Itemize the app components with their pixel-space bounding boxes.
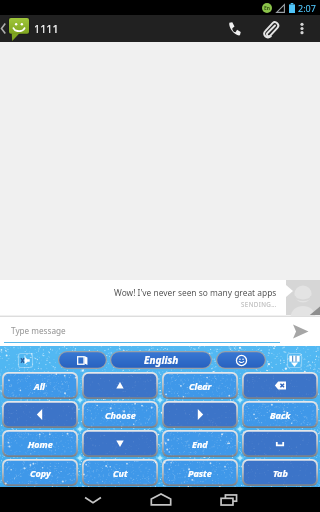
staticText: Wow! I've never seen so many great apps (114, 287, 277, 298)
staticText: Paste (188, 467, 212, 479)
button[interactable]: Paste (162, 459, 238, 486)
staticText: English (144, 353, 179, 367)
button[interactable]: Type message (0, 316, 280, 346)
button[interactable]: Cut (82, 459, 158, 486)
staticText: Copy (30, 467, 51, 479)
staticText: Choose (105, 409, 136, 421)
button[interactable]: Send (280, 316, 320, 346)
staticText: Home (28, 438, 53, 450)
staticText: End (192, 438, 208, 450)
button[interactable]: space (242, 430, 318, 457)
button[interactable]: All (2, 372, 78, 399)
staticText: Back (270, 409, 291, 421)
staticText: Cut (113, 467, 128, 479)
button[interactable]: up (82, 372, 158, 399)
staticText: 1111 (34, 21, 59, 36)
button[interactable]: down (82, 430, 158, 457)
button[interactable]: English (110, 351, 212, 369)
button[interactable]: Navigate up (0, 15, 59, 42)
button[interactable]: Tab (242, 459, 318, 486)
button[interactable]: Back (242, 401, 318, 428)
button[interactable]: Home (127, 487, 195, 512)
button[interactable]: Clear (162, 372, 238, 399)
button[interactable]: Wow! I've never seen so many great apps (0, 280, 286, 315)
button[interactable]: Attach (252, 15, 288, 42)
staticText: All (34, 380, 46, 392)
button[interactable]: Mute (18, 353, 33, 368)
staticText: Type message (11, 325, 66, 336)
staticText: Clear (189, 380, 212, 392)
button[interactable]: Hide keyboard (287, 353, 302, 368)
button[interactable]: Copy (2, 459, 78, 486)
button[interactable]: More options (288, 15, 316, 42)
button[interactable]: Recents (195, 487, 263, 512)
button[interactable]: Call (216, 15, 252, 42)
button[interactable]: Choose (82, 401, 158, 428)
button[interactable]: Home (2, 430, 78, 457)
staticText: SENDING… (241, 300, 277, 308)
staticText: En (264, 5, 271, 12)
button[interactable]: del (242, 372, 318, 399)
button[interactable]: Back (59, 487, 127, 512)
button[interactable]: left (2, 401, 78, 428)
button[interactable]: End (162, 430, 238, 457)
button[interactable]: Emoji (216, 351, 266, 369)
staticText: 2:07 (298, 2, 316, 14)
staticText: Tab (273, 467, 288, 479)
button[interactable]: right (162, 401, 238, 428)
button[interactable]: Switch input (58, 351, 107, 369)
